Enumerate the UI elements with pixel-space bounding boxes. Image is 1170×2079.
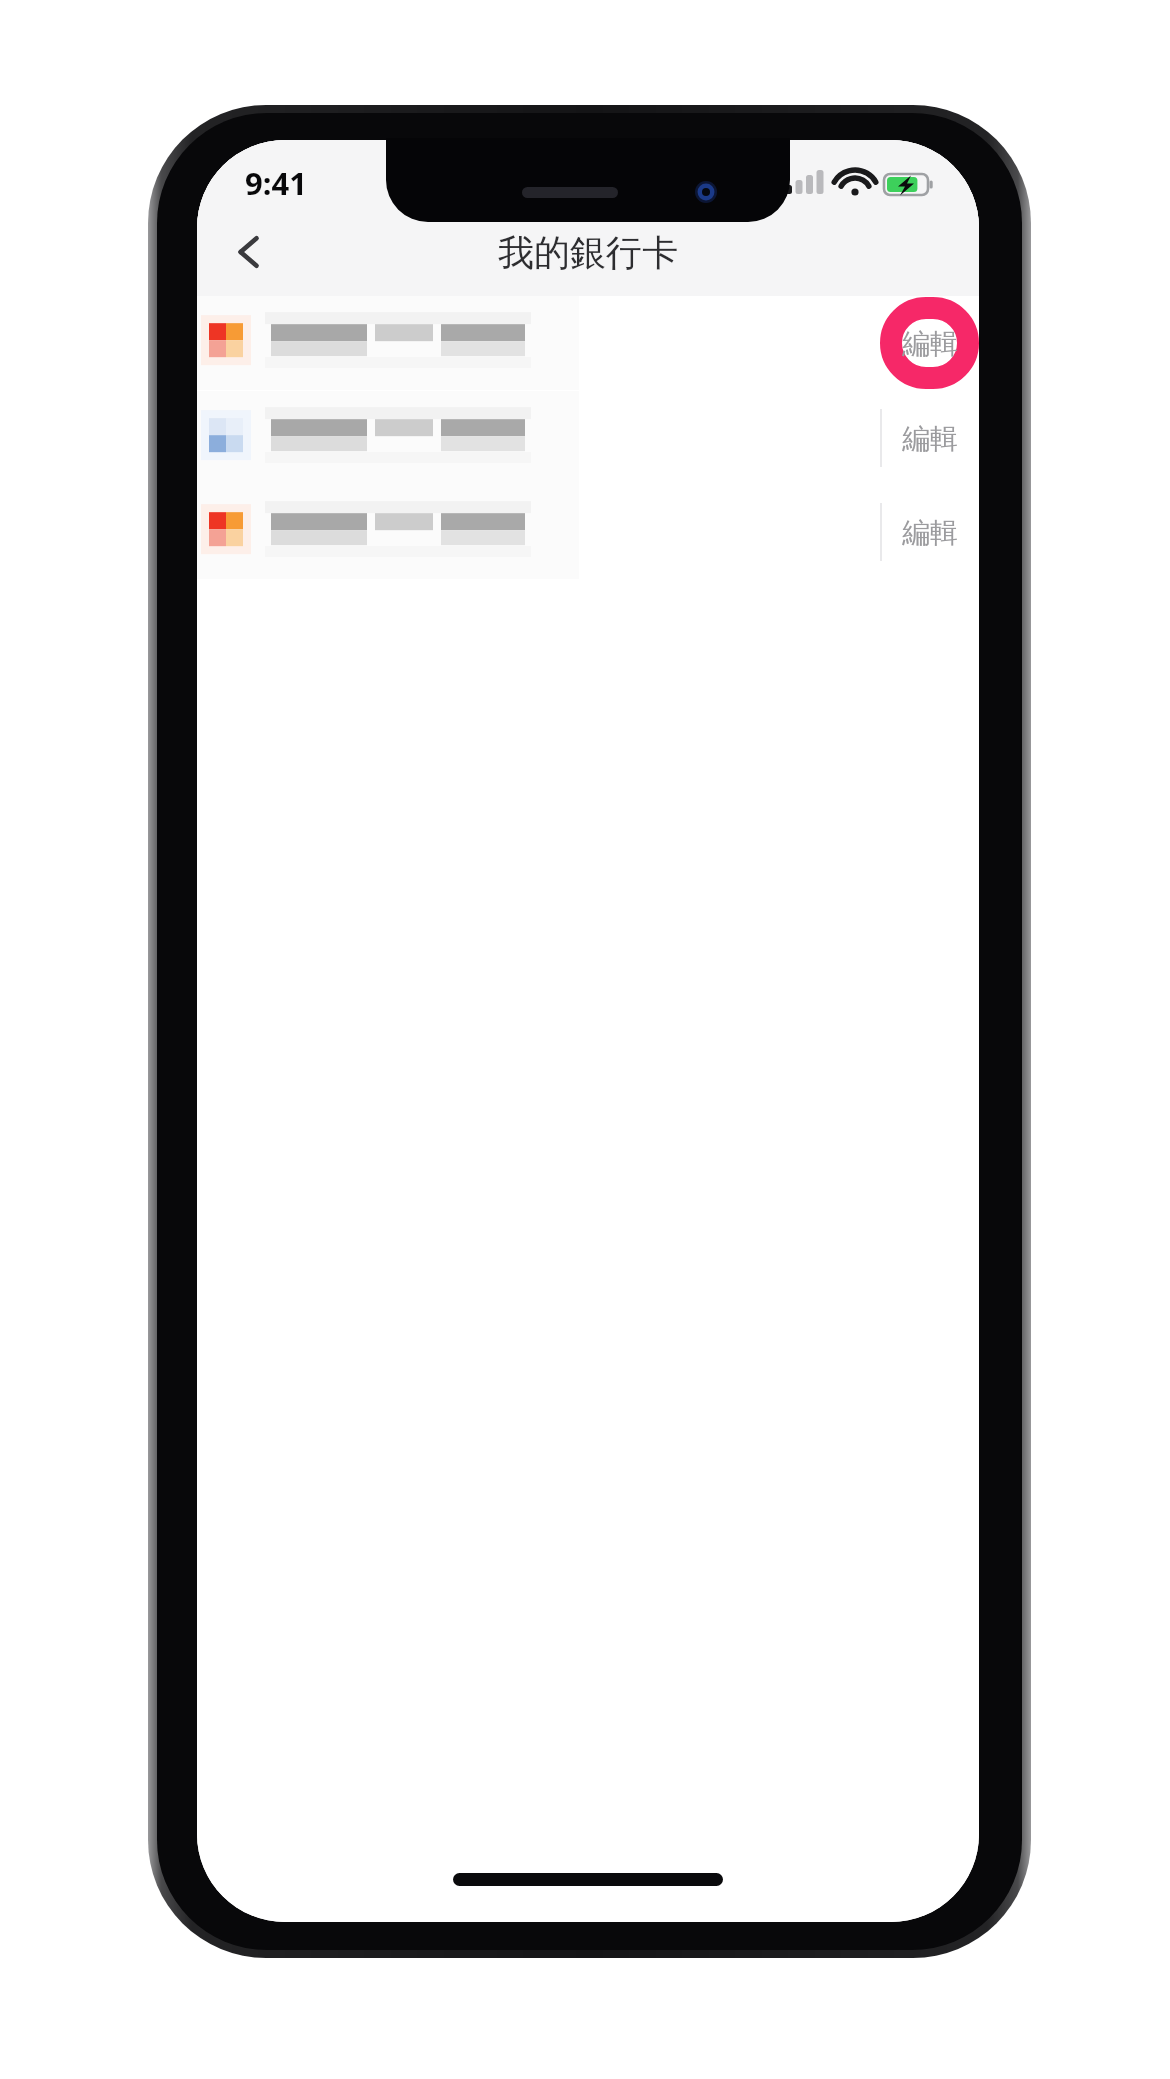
button[interactable]: 編輯 [197, 296, 979, 390]
button[interactable]: 編輯 [880, 296, 979, 390]
staticText: 編輯 [902, 326, 958, 361]
staticText: 編輯 [902, 421, 958, 456]
staticText: 我的銀行卡 [498, 230, 678, 275]
button[interactable]: 編輯 [880, 391, 979, 485]
button[interactable]: 編輯 [880, 485, 979, 579]
staticText: 編輯 [902, 515, 958, 550]
button[interactable]: 編輯 [197, 485, 979, 579]
staticText: 9:41 [245, 162, 307, 204]
button[interactable]: 編輯 [197, 391, 979, 485]
button[interactable]: 返回 [205, 208, 293, 296]
